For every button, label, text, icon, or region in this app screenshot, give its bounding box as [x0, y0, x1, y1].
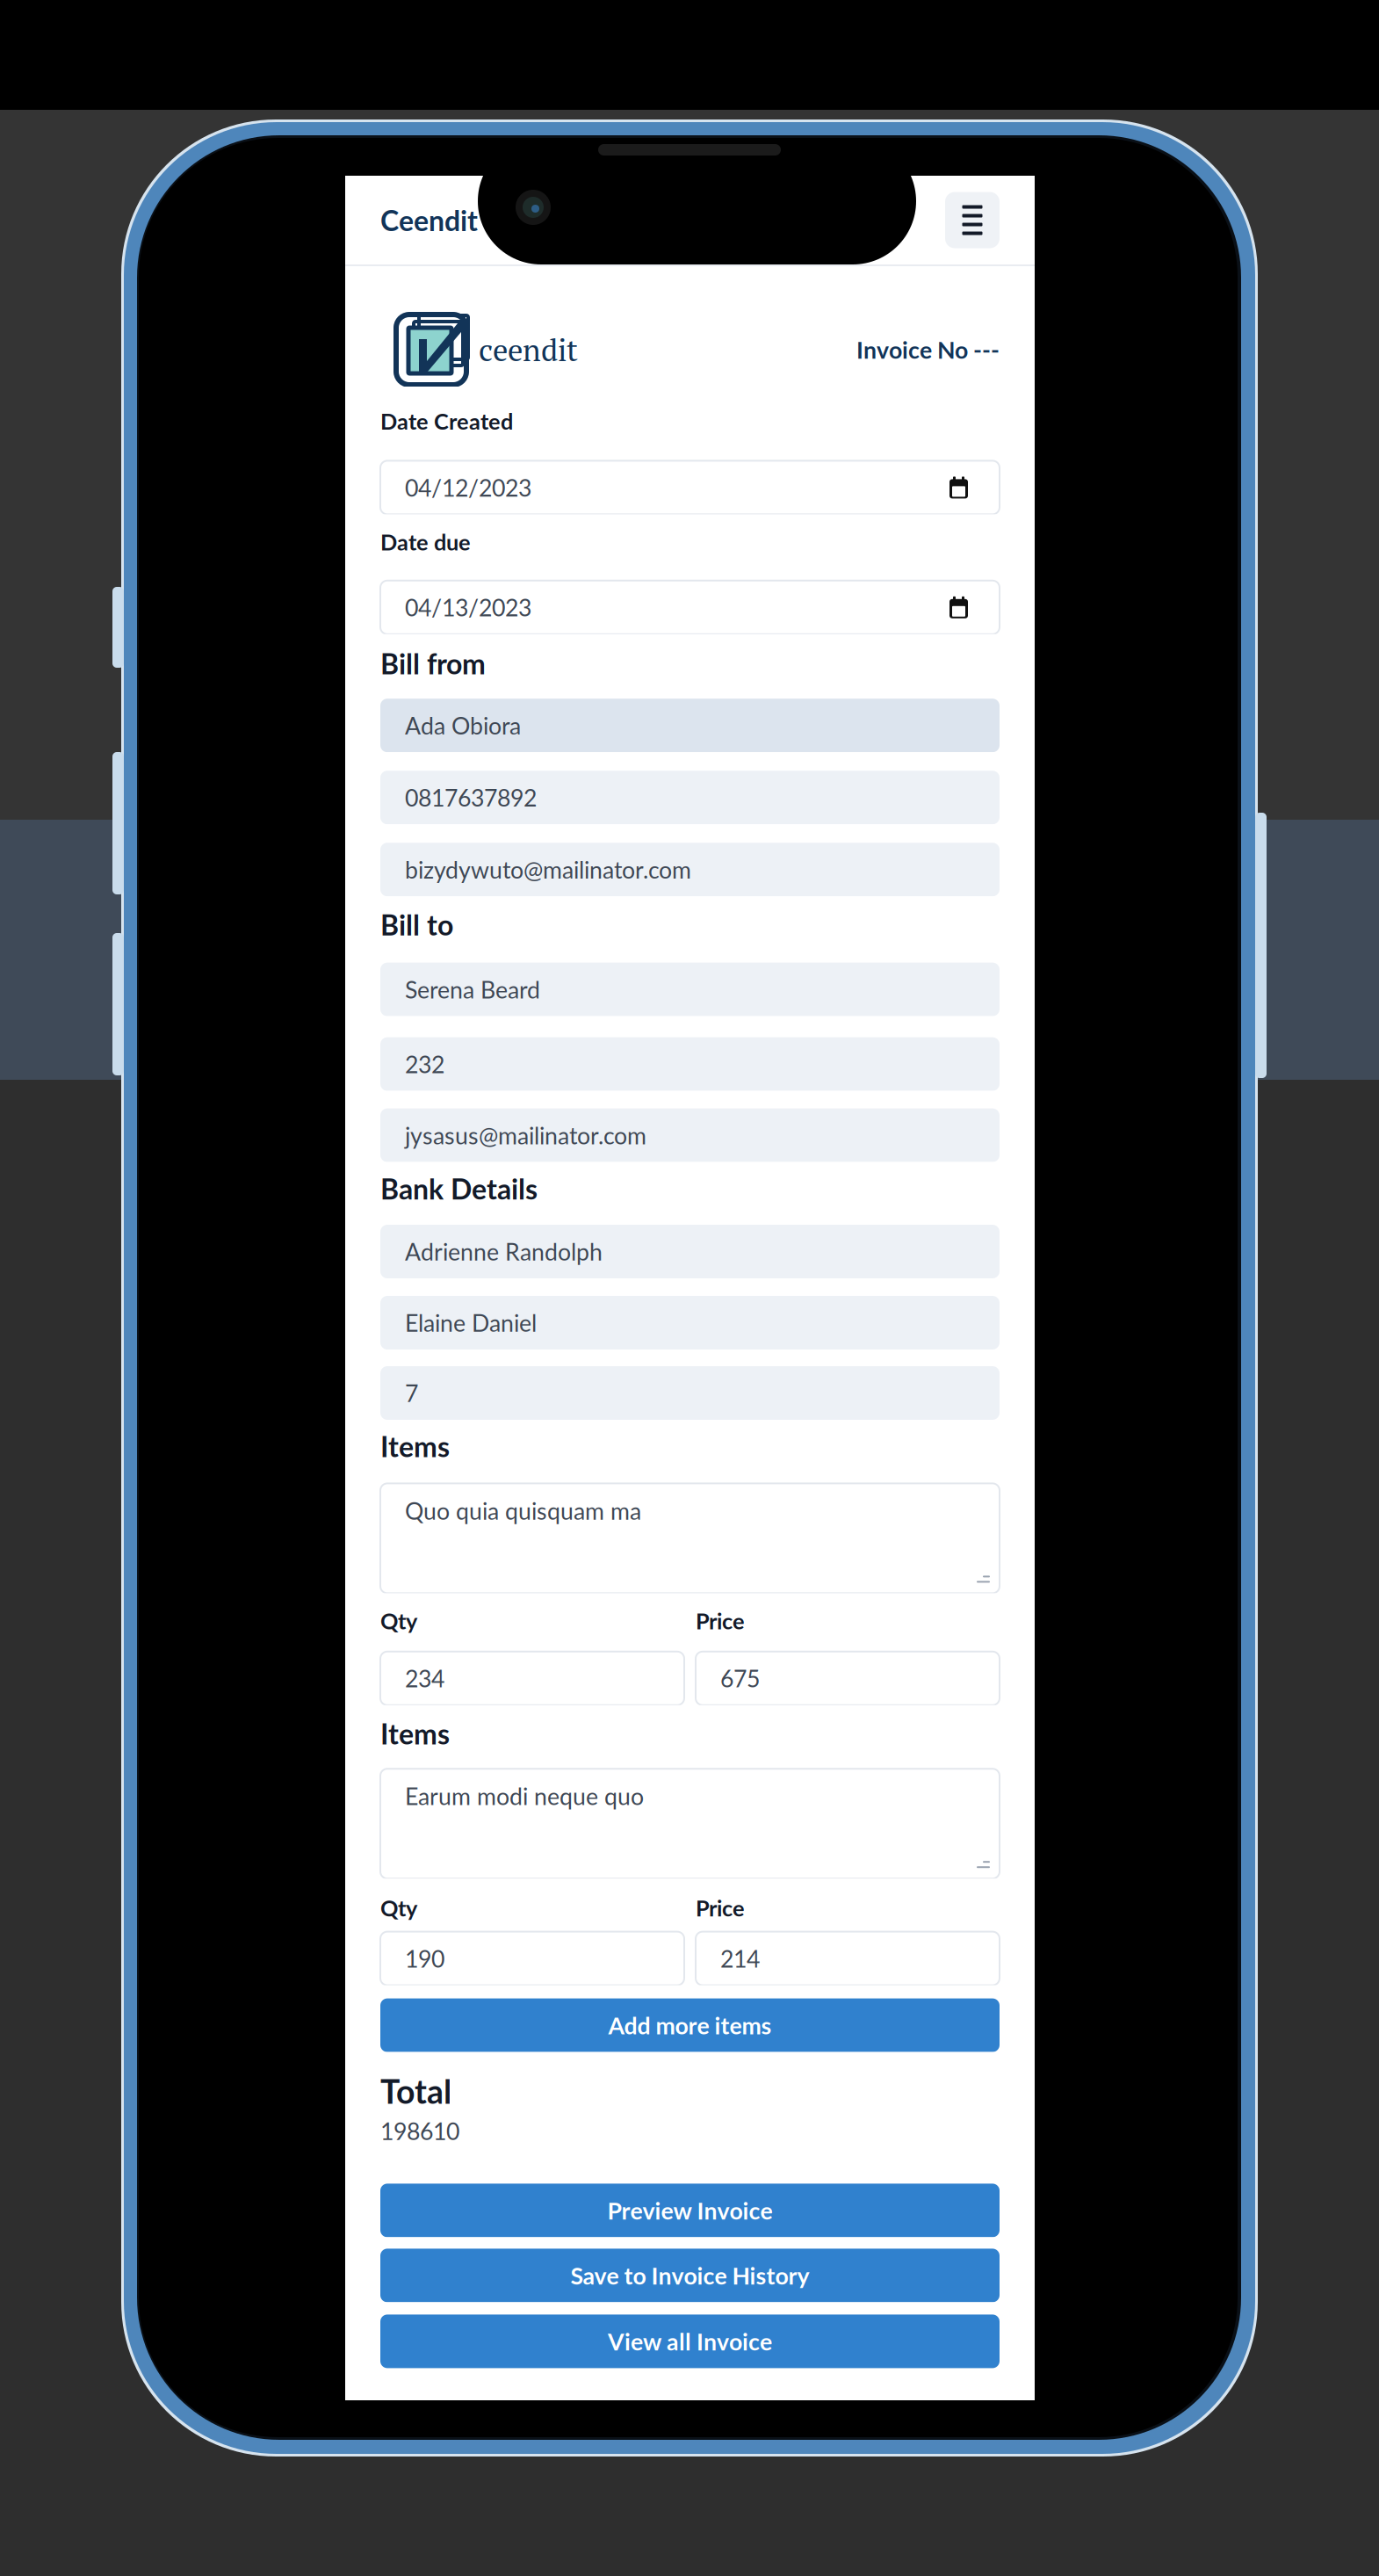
staticText: jysasus@mailinator.com [405, 1121, 646, 1149]
staticText: Adrienne Randolph [405, 1237, 603, 1266]
staticText: 232 [405, 1050, 444, 1078]
staticText: ceendit [479, 329, 578, 370]
staticText: Items [380, 1429, 450, 1463]
staticText: Qty [380, 1607, 417, 1634]
staticText: 190 [405, 1944, 444, 1973]
staticText: Date due [380, 528, 471, 555]
staticText: Price [696, 1894, 745, 1921]
button[interactable]: Menu [945, 192, 1000, 248]
staticText: 214 [720, 1944, 760, 1973]
staticText: Bill from [380, 646, 486, 680]
staticText: Ada Obiora [405, 711, 521, 740]
staticText: Invoice No --- [856, 336, 1000, 364]
staticText: Bill to [380, 908, 453, 941]
staticText: View all Invoice [608, 2327, 772, 2355]
button[interactable]: Preview Invoice [380, 2184, 1000, 2237]
staticText: Serena Beard [405, 975, 540, 1003]
staticText: Earum modi neque quo [405, 1782, 644, 1810]
staticText: Add more items [608, 2011, 772, 2039]
staticText: Items [380, 1717, 450, 1750]
staticText: Ceendit [380, 203, 478, 237]
staticText: Elaine Daniel [405, 1309, 537, 1337]
staticText: Price [696, 1607, 745, 1634]
staticText: Qty [380, 1894, 417, 1921]
staticText: Quo quia quisquam ma [405, 1497, 641, 1525]
button[interactable]: Save to Invoice History [380, 2249, 1000, 2302]
staticText: Total [380, 2071, 451, 2111]
staticText: 675 [720, 1664, 760, 1692]
staticText: Bank Details [380, 1172, 538, 1205]
staticText: 04/12/2023 [405, 473, 531, 502]
button[interactable]: Add more items [380, 1998, 1000, 2052]
staticText: 7 [405, 1379, 418, 1407]
button[interactable]: View all Invoice [380, 2315, 1000, 2368]
staticText: 198610 [380, 2117, 459, 2145]
staticText: bizydywuto@mailinator.com [405, 855, 691, 884]
staticText: Save to Invoice History [570, 2261, 809, 2289]
staticText: 0817637892 [405, 783, 537, 812]
staticText: Date Created [380, 408, 513, 434]
staticText: 234 [405, 1664, 444, 1692]
staticText: Preview Invoice [607, 2196, 773, 2224]
staticText: 04/13/2023 [405, 593, 531, 621]
